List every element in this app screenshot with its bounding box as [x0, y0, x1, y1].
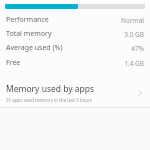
button[interactable]: Total memory	[0, 27, 150, 41]
staticText: 3.0 GB	[124, 30, 144, 39]
staticText: Memory used by apps	[6, 83, 95, 95]
button[interactable]: Memory used by apps	[0, 78, 150, 107]
staticText: Normal	[121, 16, 144, 25]
staticText: Average used (%)	[6, 43, 63, 53]
staticText: Total memory	[6, 29, 52, 39]
button[interactable]: Free	[0, 56, 150, 70]
button[interactable]: Average used (%)	[0, 41, 150, 55]
staticText: Free	[6, 58, 21, 68]
staticText: 47%	[131, 44, 144, 53]
button[interactable]: Performance	[0, 13, 150, 27]
staticText: 31 apps used memory in the last 3 hours	[6, 97, 93, 103]
staticText: Performance	[6, 15, 49, 25]
other: Open memory used by apps	[134, 87, 146, 99]
staticText: 1.4 GB	[124, 59, 144, 68]
